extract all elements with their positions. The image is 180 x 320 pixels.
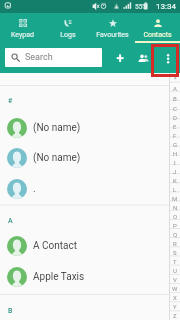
button[interactable]: Search <box>5 48 102 67</box>
button[interactable]: L <box>170 185 180 194</box>
button[interactable]: A <box>0 208 180 234</box>
button[interactable]: Contacts <box>135 13 180 43</box>
button[interactable]: B <box>170 93 180 103</box>
staticText: D <box>173 114 177 121</box>
button[interactable]: D <box>170 113 180 122</box>
button[interactable]: # <box>0 88 180 114</box>
staticText: E <box>173 123 177 130</box>
button[interactable]: . <box>0 174 180 204</box>
staticText: * <box>174 75 177 82</box>
staticText: Search <box>25 52 53 63</box>
button[interactable]: U <box>170 266 180 275</box>
button[interactable]: X <box>170 293 180 302</box>
staticText: Q <box>173 231 178 238</box>
button[interactable]: W <box>170 284 180 293</box>
button[interactable]: F <box>170 131 180 140</box>
staticText: Z <box>173 312 177 319</box>
staticText: 13:34 <box>156 2 176 11</box>
staticText: B <box>173 95 177 102</box>
staticText: P <box>173 222 177 229</box>
staticText: S <box>173 249 177 256</box>
button[interactable]: (No name) <box>0 113 180 143</box>
button[interactable]: K <box>170 176 180 185</box>
button[interactable]: R <box>170 239 180 248</box>
staticText: W <box>172 285 178 292</box>
button[interactable]: I <box>170 158 180 167</box>
staticText: 55% <box>135 3 148 11</box>
staticText: Apple Taxis <box>33 271 85 283</box>
button[interactable]: O <box>170 212 180 221</box>
button[interactable]: H <box>170 149 180 158</box>
button[interactable]: A <box>170 83 180 93</box>
staticText: Y <box>173 303 177 310</box>
staticText: J <box>173 168 177 175</box>
staticText: B <box>8 307 13 315</box>
button[interactable]: Keypad <box>0 13 45 43</box>
button[interactable]: Groups <box>136 43 150 73</box>
staticText: C <box>173 105 177 112</box>
button[interactable]: M <box>170 194 180 203</box>
staticText: F <box>173 132 177 139</box>
staticText: G <box>173 141 178 148</box>
staticText: N <box>173 204 178 211</box>
button[interactable]: A Contact <box>0 231 180 261</box>
staticText: H <box>173 150 178 157</box>
button[interactable]: Add contact <box>109 43 131 73</box>
staticText: M <box>172 195 178 202</box>
button[interactable]: (No name) <box>0 143 180 173</box>
button[interactable]: V <box>170 275 180 284</box>
staticText: . <box>33 183 36 195</box>
staticText: Favourites <box>96 31 129 39</box>
button[interactable]: S <box>170 248 180 257</box>
staticText: A Contact <box>33 240 77 252</box>
staticText: Contacts <box>143 31 172 39</box>
staticText: O <box>173 213 178 220</box>
button[interactable]: Q <box>170 230 180 239</box>
staticText: (No name) <box>33 152 81 164</box>
staticText: I <box>174 159 176 166</box>
button[interactable]: Favourites <box>90 13 135 43</box>
button[interactable]: Apple Taxis <box>0 262 180 292</box>
staticText: U <box>173 267 177 274</box>
button[interactable]: * <box>170 73 180 83</box>
button[interactable]: B <box>0 298 180 320</box>
staticText: Logs <box>60 31 76 39</box>
button[interactable]: P <box>170 221 180 230</box>
staticText: K <box>173 177 177 184</box>
button[interactable]: E <box>170 122 180 131</box>
staticText: A <box>173 85 177 92</box>
button[interactable]: G <box>170 140 180 149</box>
staticText: (No name) <box>33 122 81 134</box>
staticText: V <box>173 276 177 283</box>
staticText: L <box>173 186 177 193</box>
staticText: X <box>173 294 177 301</box>
button[interactable]: More options <box>160 43 176 73</box>
staticText: R <box>173 240 177 247</box>
staticText: T <box>173 258 177 265</box>
staticText: A <box>8 217 13 225</box>
button[interactable]: Logs <box>45 13 90 43</box>
button[interactable]: Y <box>170 302 180 311</box>
button[interactable]: N <box>170 203 180 212</box>
button[interactable]: J <box>170 167 180 176</box>
button[interactable]: C <box>170 103 180 113</box>
staticText: Keypad <box>11 31 34 39</box>
button[interactable]: Z <box>170 311 180 320</box>
staticText: # <box>8 97 13 105</box>
button[interactable]: T <box>170 257 180 266</box>
